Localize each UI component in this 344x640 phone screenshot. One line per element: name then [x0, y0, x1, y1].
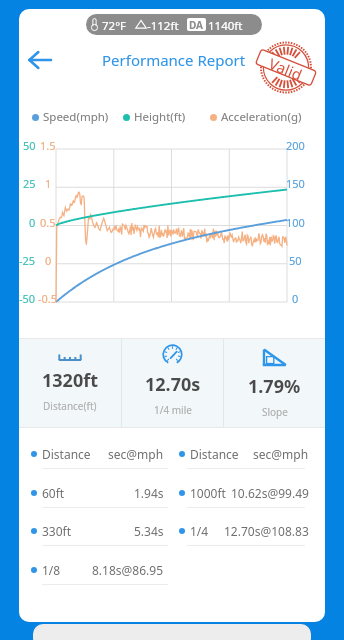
staticText: Distance(ft) [43, 399, 97, 413]
staticText: -50 [19, 291, 36, 304]
staticText: 0 [45, 253, 52, 266]
staticText: 1.5 [40, 138, 56, 151]
button[interactable]: 60ft [31, 479, 164, 507]
staticText: 1.79% [248, 374, 301, 399]
staticText: 1/4 [190, 523, 209, 539]
button[interactable]: 1.79% [224, 339, 325, 427]
staticText: 50 [23, 138, 36, 151]
staticText: Speed(mph) [43, 109, 109, 125]
staticText: 0 [29, 215, 36, 228]
staticText: Distance [190, 446, 239, 462]
staticText: Height(ft) [134, 109, 186, 125]
staticText: 12.70s@108.83 [224, 523, 309, 539]
staticText: 10.62s@99.49 [231, 485, 309, 501]
staticText: Slope [262, 405, 288, 419]
staticText: Performance Report [102, 50, 246, 70]
button[interactable]: 72°F [86, 14, 262, 35]
staticText: 25 [23, 176, 36, 189]
button[interactable]: 1/4 [179, 517, 309, 545]
button[interactable]: 1/8 [31, 556, 164, 584]
staticText: -25 [19, 253, 36, 266]
staticText: 1000ft [190, 485, 226, 501]
staticText: 0 [292, 291, 299, 304]
staticText: 72°F [102, 18, 127, 34]
staticText: 1/4 mile [154, 403, 192, 417]
button[interactable]: 12.70s [122, 339, 223, 427]
staticText: 1140ft [208, 18, 243, 34]
staticText: 1320ft [42, 368, 98, 393]
staticText: 60ft [42, 485, 65, 501]
staticText: 1.94s [134, 485, 164, 501]
staticText: sec@mph [108, 446, 164, 462]
staticText: 150 [286, 176, 305, 189]
staticText: DA [189, 18, 204, 31]
button[interactable]: 330ft [31, 517, 164, 545]
button[interactable]: Distance [31, 440, 164, 468]
staticText: sec@mph [253, 446, 309, 462]
staticText: -0.5 [38, 291, 58, 304]
button[interactable]: Back [22, 43, 58, 77]
staticText: Acceleration(g) [221, 109, 302, 125]
staticText: 12.70s [145, 372, 201, 397]
staticText: 100 [286, 215, 305, 228]
staticText: 200 [286, 138, 305, 151]
button[interactable]: 1000ft [179, 479, 309, 507]
staticText: Distance [42, 446, 91, 462]
staticText: Valid [267, 53, 306, 82]
button[interactable]: Speed(mph) [32, 109, 109, 125]
staticText: -112ft [147, 18, 179, 34]
button[interactable]: Height(ft) [123, 109, 186, 125]
button[interactable]: Distance [179, 440, 309, 468]
staticText: 50 [289, 253, 302, 266]
staticText: 0.5 [40, 215, 56, 228]
staticText: 5.34s [134, 523, 164, 539]
staticText: 1/8 [42, 562, 61, 578]
staticText: 1 [45, 176, 52, 189]
staticText: 8.18s@86.95 [92, 562, 164, 578]
staticText: 330ft [42, 523, 72, 539]
button[interactable]: Acceleration(g) [210, 109, 302, 125]
button[interactable]: 1320ft [19, 339, 121, 427]
